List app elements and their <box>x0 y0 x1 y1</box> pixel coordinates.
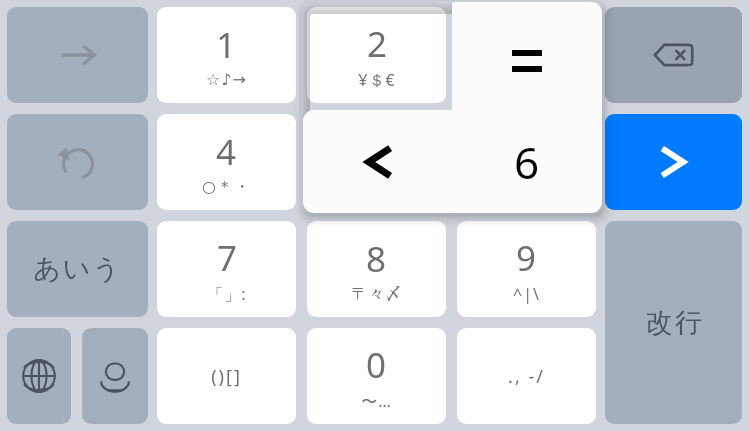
staticText: 6 <box>514 132 540 192</box>
staticText: ○＊・ <box>202 177 251 197</box>
button[interactable]: Next <box>605 114 742 210</box>
staticText: 「」: <box>207 283 247 305</box>
button[interactable]: ()[] <box>157 328 296 424</box>
staticText: 8 <box>366 235 387 283</box>
button[interactable]: Switch keyboard <box>7 328 71 424</box>
button[interactable]: equals <box>452 2 602 110</box>
button[interactable]: 改行 <box>605 221 742 424</box>
button[interactable]: Delete <box>605 7 742 103</box>
staticText: 〜… <box>361 390 392 412</box>
staticText: 改行 <box>645 306 703 340</box>
button[interactable]: 7 <box>157 221 296 317</box>
button[interactable]: Move left <box>303 110 453 213</box>
button[interactable]: Voice input <box>82 328 148 424</box>
button[interactable]: 5 <box>307 114 446 210</box>
staticText: 2 <box>367 20 388 68</box>
staticText: 〒々〆 <box>351 284 402 304</box>
button[interactable]: 4 <box>157 114 296 210</box>
button[interactable]: Undo <box>7 114 148 210</box>
button[interactable]: ., -/ <box>457 328 596 424</box>
button[interactable]: 1 <box>157 7 296 103</box>
staticText: ()[] <box>211 364 242 389</box>
button[interactable]: 6 <box>452 110 602 213</box>
button[interactable]: 9 <box>457 221 596 317</box>
staticText: 1 <box>216 21 237 69</box>
staticText: あいう <box>33 252 122 286</box>
staticText: 3 <box>517 20 538 68</box>
staticText: 9 <box>516 234 537 282</box>
button[interactable]: 8 <box>307 221 446 317</box>
button[interactable]: Next <box>7 7 148 103</box>
staticText: ., -/ <box>508 364 545 389</box>
staticText: ABC <box>510 69 544 91</box>
button[interactable]: あいう <box>7 221 148 317</box>
button[interactable]: 6 <box>457 114 596 210</box>
staticText: ☆♪→ <box>206 70 247 89</box>
staticText: 4 <box>216 128 237 176</box>
staticText: 0 <box>366 341 387 389</box>
staticText: ¥＄€ <box>358 69 396 91</box>
staticText: ^|\ <box>513 283 540 305</box>
button[interactable]: 3 <box>457 7 596 103</box>
staticText: 7 <box>217 234 238 282</box>
staticText: 5 <box>366 128 387 176</box>
staticText: 6 <box>516 128 537 176</box>
button[interactable]: 0 <box>307 328 446 424</box>
button[interactable]: 2 <box>307 7 446 103</box>
